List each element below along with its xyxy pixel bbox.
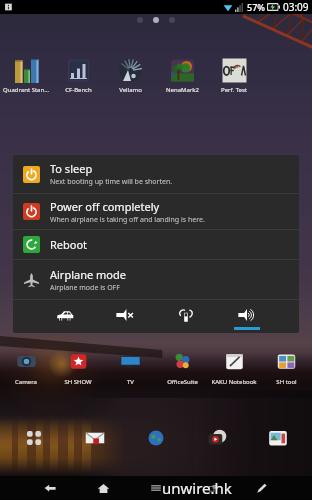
staticText: Perf. Test (221, 86, 247, 94)
button[interactable]: Sound (216, 300, 277, 333)
button[interactable]: Recent apps (144, 476, 168, 500)
staticText: 03:09 (283, 0, 309, 14)
button[interactable]: Gallery (265, 425, 291, 451)
button[interactable]: Apps (21, 425, 47, 451)
button[interactable]: Car mode (35, 300, 95, 333)
staticText: Camera (15, 378, 37, 386)
button[interactable]: Vibrate (155, 300, 216, 333)
button[interactable]: Mute (95, 300, 155, 333)
staticText: Vellamo (119, 86, 142, 94)
staticText: TV (127, 378, 134, 386)
button[interactable]: TV (104, 350, 156, 386)
button[interactable]: KAKU Notebook (208, 350, 260, 386)
button[interactable]: Home (91, 476, 115, 500)
staticText: Airplane mode is OFF (50, 283, 120, 293)
button[interactable]: Airplane mode (13, 260, 299, 299)
staticText: OfficeSuite (167, 378, 198, 386)
button[interactable]: Camera (0, 350, 52, 386)
staticText: SH tool (276, 378, 297, 386)
button[interactable]: Vellamo (104, 58, 156, 94)
staticText: To sleep (50, 161, 93, 176)
button[interactable]: OfficeSuite (156, 350, 208, 386)
button[interactable]: Quadrant Stan… (0, 58, 52, 94)
button[interactable]: SH SHOW (52, 350, 104, 386)
button[interactable]: Email (82, 425, 108, 451)
staticText: Quadrant Stan… (3, 86, 49, 94)
staticText: Reboot (50, 237, 88, 252)
staticText: When airplane is taking off and landing … (50, 215, 205, 225)
staticText: NenaMark2 (166, 86, 199, 94)
button[interactable]: Small apps (200, 476, 224, 500)
staticText: Airplane mode (50, 267, 126, 282)
staticText: Power off completely (50, 199, 160, 214)
button[interactable]: To sleep (13, 155, 299, 193)
staticText: Next booting up time will be shorten. (50, 177, 173, 187)
button[interactable]: Browser (143, 425, 169, 451)
button[interactable]: CF-Bench (52, 58, 104, 94)
button[interactable]: Back (38, 476, 62, 500)
button[interactable]: Movies (204, 425, 230, 451)
staticText: KAKU Notebook (211, 378, 257, 386)
button[interactable]: NenaMark2 (156, 58, 208, 94)
staticText: 57% (247, 1, 265, 13)
staticText: CF-Bench (65, 86, 92, 94)
button[interactable]: Edit (250, 476, 274, 500)
staticText: SH SHOW (64, 378, 92, 386)
button[interactable]: Reboot (13, 230, 299, 259)
staticText: unwire.hk (162, 478, 232, 498)
button[interactable]: Power off completely (13, 194, 299, 229)
button[interactable]: SH tool (260, 350, 312, 386)
button[interactable]: Perf. Test (208, 58, 260, 94)
